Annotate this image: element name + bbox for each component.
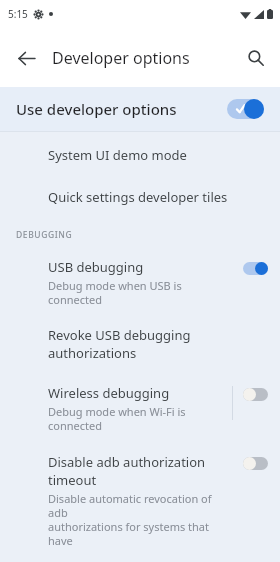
button[interactable]: Back (8, 40, 44, 76)
button[interactable]: System UI demo mode (0, 132, 280, 178)
button[interactable]: Disable adb authorization timeout (233, 444, 280, 478)
button[interactable]: Quick settings developer tiles (0, 178, 280, 218)
staticText: Wireless debugging (48, 384, 170, 402)
button[interactable]: Use developer options (0, 87, 280, 131)
button[interactable]: Revoke USB debugging authorizations (0, 316, 280, 375)
button[interactable]: Disable adb authorization timeout (0, 444, 232, 562)
staticText: Developer options (52, 47, 190, 69)
button[interactable]: Search (239, 41, 273, 75)
staticText: USB debugging (48, 258, 144, 276)
staticText: Revoke USB debugging authorizations (48, 326, 264, 362)
staticText: Use developer options (16, 99, 227, 119)
staticText: Disable adb authorization timeout (48, 453, 226, 489)
button[interactable]: USB debugging (0, 249, 232, 316)
staticText: Debug mode when USB is connected (48, 278, 226, 307)
button[interactable]: USB debugging (233, 249, 280, 283)
staticText: System UI demo mode (48, 146, 187, 164)
staticText: Debug mode when Wi-Fi is connected (48, 404, 186, 433)
staticText: DEBUGGING (16, 229, 73, 241)
button[interactable]: Wireless debugging (233, 375, 280, 409)
staticText: 5:15 (8, 7, 28, 21)
staticText: Quick settings developer tiles (48, 188, 228, 206)
button[interactable]: Wireless debugging (0, 375, 232, 444)
staticText: Disable automatic revocation of adb auth… (48, 491, 226, 550)
